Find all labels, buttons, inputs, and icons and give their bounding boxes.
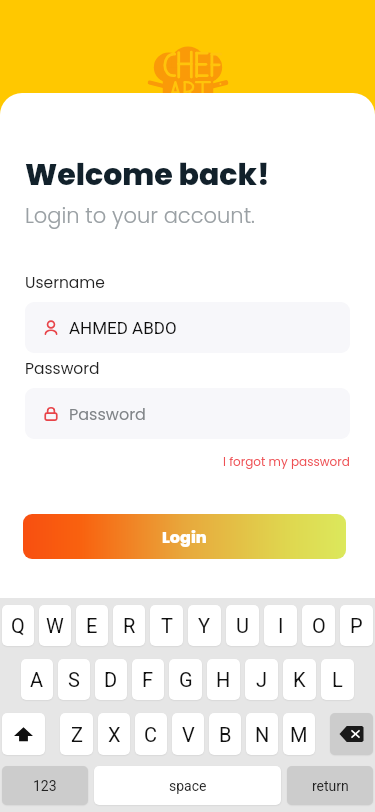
button[interactable]: W: [39, 605, 71, 646]
button[interactable]: I: [264, 605, 297, 646]
staticText: space: [169, 778, 207, 794]
button[interactable]: U: [226, 605, 259, 646]
staticText: N: [255, 723, 270, 746]
button[interactable]: space: [94, 766, 281, 805]
button[interactable]: E: [76, 605, 108, 646]
button[interactable]: H: [207, 659, 240, 700]
button[interactable]: V: [172, 713, 204, 755]
button[interactable]: T: [150, 605, 183, 646]
staticText: J: [256, 668, 268, 691]
button[interactable]: K: [283, 659, 316, 700]
button[interactable]: S: [58, 659, 90, 700]
button[interactable]: return: [287, 766, 373, 805]
staticText: Username: [25, 272, 105, 294]
button[interactable]: AHMED ABDO: [25, 302, 350, 353]
staticText: 123: [33, 778, 57, 794]
staticText: E: [86, 614, 98, 637]
staticText: G: [179, 668, 193, 691]
button[interactable]: Login: [23, 514, 346, 559]
staticText: AHMED ABDO: [69, 318, 177, 338]
button[interactable]: O: [302, 605, 335, 646]
staticText: Welcome back!: [25, 154, 270, 196]
staticText: Q: [11, 614, 25, 637]
button[interactable]: A: [21, 659, 53, 700]
staticText: I: [278, 614, 284, 637]
button[interactable]: I forgot my password: [223, 453, 350, 470]
staticText: V: [182, 723, 195, 746]
button[interactable]: G: [169, 659, 202, 700]
staticText: Login to your account.: [25, 201, 255, 230]
staticText: Login: [162, 526, 207, 548]
staticText: Z: [71, 723, 83, 746]
button[interactable]: B: [209, 713, 241, 755]
button[interactable]: M: [283, 713, 315, 755]
staticText: D: [104, 668, 118, 691]
staticText: F: [142, 668, 154, 691]
button[interactable]: Password: [25, 388, 350, 439]
staticText: U: [236, 614, 249, 637]
button[interactable]: R: [113, 605, 145, 646]
button[interactable]: P: [340, 605, 373, 646]
button[interactable]: Delete: [330, 713, 373, 755]
button[interactable]: Z: [60, 713, 93, 755]
staticText: L: [332, 668, 343, 691]
staticText: K: [293, 668, 306, 691]
staticText: Password: [69, 403, 146, 425]
button[interactable]: Q: [2, 605, 34, 646]
button[interactable]: 123: [2, 766, 88, 805]
staticText: P: [350, 614, 363, 637]
staticText: Y: [198, 614, 211, 637]
button[interactable]: X: [98, 713, 130, 755]
staticText: S: [68, 668, 80, 691]
staticText: return: [312, 778, 349, 794]
button[interactable]: F: [132, 659, 164, 700]
staticText: H: [216, 668, 231, 691]
staticText: Password: [25, 358, 100, 380]
staticText: R: [123, 614, 136, 637]
staticText: M: [290, 723, 308, 746]
button[interactable]: N: [246, 713, 278, 755]
button[interactable]: L: [321, 659, 354, 700]
button[interactable]: D: [95, 659, 127, 700]
staticText: B: [219, 723, 232, 746]
button[interactable]: J: [245, 659, 278, 700]
staticText: O: [312, 614, 326, 637]
staticText: A: [30, 668, 44, 691]
staticText: C: [144, 723, 158, 746]
staticText: W: [46, 614, 64, 637]
staticText: T: [161, 614, 173, 637]
button[interactable]: Shift: [2, 713, 45, 755]
staticText: X: [108, 723, 121, 746]
button[interactable]: C: [135, 713, 167, 755]
button[interactable]: Y: [188, 605, 221, 646]
